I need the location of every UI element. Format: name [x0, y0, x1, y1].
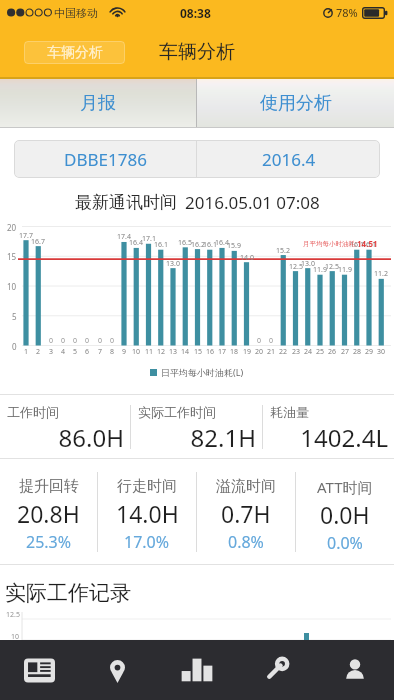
button[interactable]: Location: [78, 640, 157, 700]
staticText: 0: [257, 336, 262, 346]
staticText: 11.2: [374, 269, 388, 279]
button[interactable]: ATT时间: [296, 459, 394, 564]
staticText: 6: [85, 347, 90, 357]
button[interactable]: 提升回转: [0, 459, 97, 564]
staticText: 2016.4: [262, 148, 316, 171]
button[interactable]: DBBE1786: [14, 140, 196, 178]
staticText: 使用分析: [260, 92, 332, 115]
staticText: 0: [98, 336, 103, 346]
staticText: 实际工作时间: [138, 404, 216, 420]
staticText: 22: [279, 347, 288, 357]
staticText: 13.0: [301, 259, 315, 269]
staticText: 23: [292, 347, 301, 357]
staticText: 15: [7, 251, 17, 262]
staticText: 17.0%: [124, 531, 170, 553]
staticText: 28: [353, 347, 362, 357]
staticText: 0.8%: [228, 531, 264, 553]
staticText: 17.4: [117, 232, 131, 242]
staticText: 12.5: [289, 262, 303, 272]
staticText: 0: [73, 336, 78, 346]
staticText: 16: [206, 347, 215, 357]
staticText: 10: [132, 347, 141, 357]
staticText: 0: [85, 336, 90, 346]
staticText: 工作时间: [7, 404, 59, 420]
staticText: 16.1: [350, 240, 364, 250]
staticText: 14.0: [240, 253, 254, 263]
staticText: 1: [24, 347, 29, 357]
staticText: 78%: [336, 5, 358, 20]
staticText: 14.51: [357, 238, 378, 249]
button[interactable]: 2016.4: [197, 140, 380, 178]
button[interactable]: Service: [236, 640, 315, 700]
button[interactable]: 月报: [0, 79, 196, 127]
staticText: 10: [11, 632, 20, 642]
staticText: 3: [49, 347, 54, 357]
staticText: DBBE1786: [64, 148, 147, 171]
staticText: 0.0%: [327, 532, 363, 554]
button[interactable]: 溢流时间: [197, 459, 295, 564]
staticText: 21: [267, 347, 276, 357]
staticText: 12.5: [6, 610, 20, 620]
staticText: 7: [98, 347, 103, 357]
staticText: 20: [255, 347, 264, 357]
staticText: 16.4: [129, 238, 143, 248]
staticText: 0: [110, 336, 115, 346]
staticText: 日平均每小时油耗(L): [161, 366, 244, 378]
staticText: 2016.05.01 07:08: [185, 191, 320, 214]
button[interactable]: News: [0, 640, 78, 700]
staticText: 29: [365, 347, 374, 357]
staticText: 实际工作记录: [5, 580, 131, 606]
staticText: 11: [145, 347, 154, 357]
staticText: 0: [49, 336, 54, 346]
staticText: 4: [61, 347, 66, 357]
staticText: 0: [12, 341, 17, 352]
staticText: 17.1: [142, 234, 156, 244]
staticText: 14.0H: [116, 498, 179, 529]
button[interactable]: Profile: [315, 640, 394, 700]
staticText: 17: [218, 347, 227, 357]
staticText: 耗油量: [270, 404, 309, 420]
staticText: 行走时间: [117, 477, 177, 496]
staticText: 30: [377, 347, 386, 357]
button[interactable]: 行走时间: [98, 459, 196, 564]
staticText: 8: [110, 347, 115, 357]
staticText: 16.1: [203, 240, 217, 250]
staticText: 12: [157, 347, 166, 357]
button[interactable]: 使用分析: [197, 79, 394, 127]
staticText: 19: [243, 347, 252, 357]
button[interactable]: 实际工作时间: [131, 395, 262, 458]
button[interactable]: 车辆分析: [24, 41, 125, 64]
staticText: 0.0H: [320, 499, 370, 530]
staticText: 27: [341, 347, 350, 357]
staticText: 16.2: [191, 240, 205, 250]
staticText: 10: [7, 281, 17, 292]
staticText: 11.9: [338, 265, 352, 275]
staticText: 82.1H: [138, 421, 256, 454]
staticText: 18: [230, 347, 239, 357]
staticText: 车辆分析: [47, 44, 103, 62]
button[interactable]: 耗油量: [263, 395, 394, 458]
staticText: 13: [169, 347, 178, 357]
button[interactable]: 工作时间: [0, 395, 130, 458]
staticText: 26: [328, 347, 337, 357]
staticText: 12.5: [325, 262, 339, 272]
staticText: 2: [36, 347, 41, 357]
staticText: 9: [122, 347, 127, 357]
staticText: 24: [304, 347, 313, 357]
staticText: ATT时间: [317, 477, 373, 497]
staticText: 16.1: [362, 240, 376, 250]
staticText: 16.4: [215, 238, 229, 248]
staticText: 1402.4L: [270, 421, 388, 454]
staticText: 月报: [80, 92, 116, 115]
staticText: 15: [194, 347, 203, 357]
staticText: 16.7: [31, 237, 45, 247]
staticText: 5: [73, 347, 78, 357]
staticText: 提升回转: [19, 477, 79, 496]
staticText: 14: [181, 347, 190, 357]
button[interactable]: Statistics: [157, 640, 236, 700]
staticText: 20.8H: [17, 498, 80, 529]
staticText: 月平均每小时油耗:: [303, 239, 357, 248]
staticText: 16.1: [154, 240, 168, 250]
staticText: 11.9: [313, 265, 327, 275]
staticText: 13.0: [166, 259, 180, 269]
